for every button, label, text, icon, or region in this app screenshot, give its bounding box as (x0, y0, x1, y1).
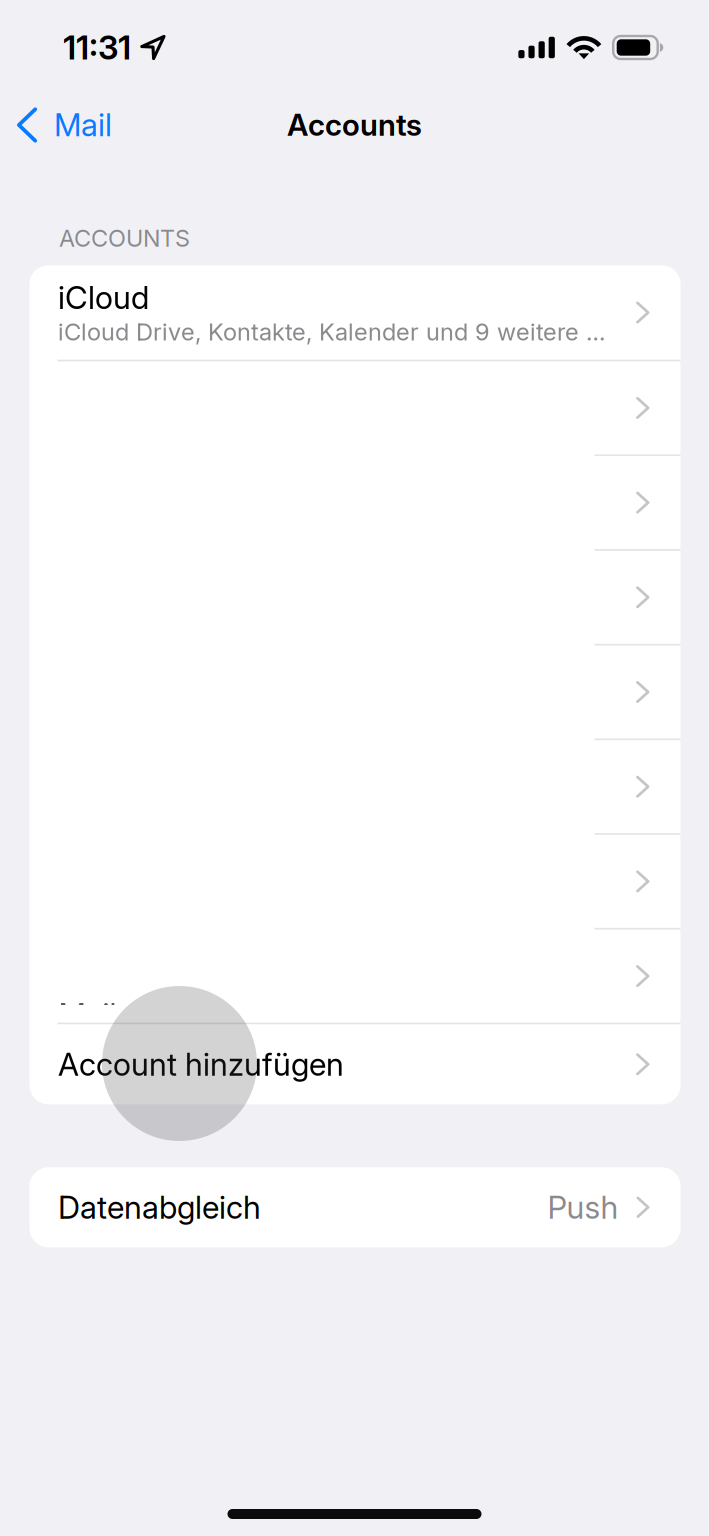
staticText: ACCOUNTS (59, 224, 190, 252)
button[interactable]: Datenabgleich (29, 1167, 680, 1247)
staticText: Push (547, 1188, 618, 1226)
button[interactable]: Mail (0, 93, 130, 157)
staticText: iCloud Drive, Kontakte, Kalender und 9 w… (58, 318, 605, 346)
staticText: Account hinzufügen (58, 1045, 344, 1083)
button[interactable]: iCloud (29, 265, 680, 360)
button[interactable]: Account hinzufügen (29, 1024, 680, 1104)
staticText: iCloud (58, 279, 149, 317)
staticText: Mail (54, 106, 112, 144)
staticText: Datenabgleich (58, 1188, 261, 1226)
staticText: Mail (59, 996, 117, 1034)
button[interactable]: Account (29, 930, 680, 1023)
staticText: Accounts (287, 107, 422, 143)
staticText: 11:31 (63, 28, 131, 67)
